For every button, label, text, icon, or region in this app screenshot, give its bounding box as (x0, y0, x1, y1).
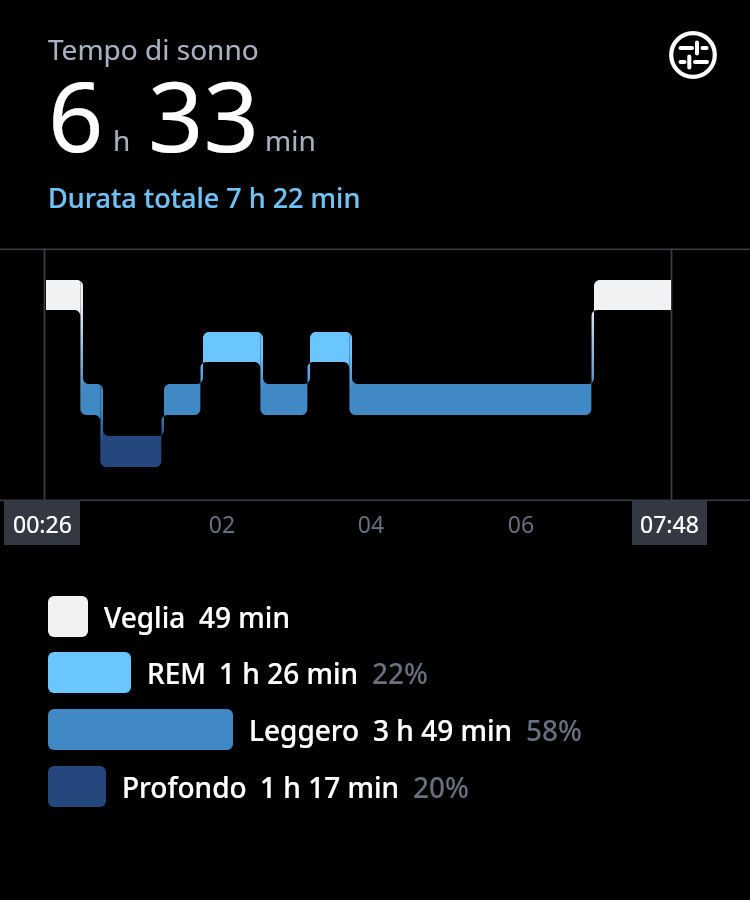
staticText: 02 (197, 508, 247, 539)
staticText: Tempo di sonno (48, 30, 259, 68)
staticText: h (113, 121, 131, 159)
staticText: Veglia (104, 598, 186, 636)
staticText: Durata totale 7 h 22 min (48, 179, 361, 216)
staticText: Profondo (122, 768, 247, 806)
staticText: Leggero (249, 711, 360, 749)
staticText: 06 (496, 508, 546, 539)
staticText: 3 h 49 min (373, 711, 513, 749)
staticText: 33 (148, 48, 259, 180)
button[interactable]: Impostazioni (667, 29, 721, 83)
staticText: 49 min (199, 598, 290, 636)
staticText: 00:26 (13, 508, 72, 539)
staticText: 1 h 17 min (260, 768, 400, 806)
staticText: 6 (48, 48, 104, 180)
staticText: REM (147, 654, 206, 692)
staticText: min (265, 121, 316, 159)
staticText: 07:48 (640, 508, 699, 539)
staticText: 20% (413, 768, 469, 806)
staticText: 1 h 26 min (219, 654, 359, 692)
staticText: 58% (526, 711, 582, 749)
staticText: 22% (372, 654, 428, 692)
staticText: 04 (346, 508, 396, 539)
